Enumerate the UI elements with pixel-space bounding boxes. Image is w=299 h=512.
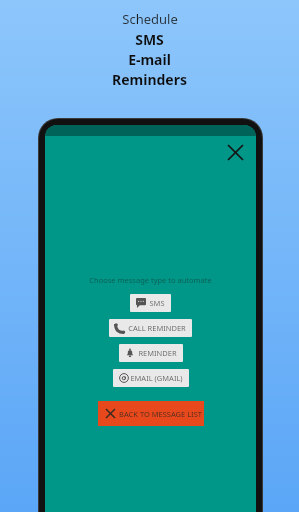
staticText: SMS [135,30,164,49]
staticText: Choose message type to automate [89,275,212,285]
staticText: CALL REMINDER [128,323,186,333]
button[interactable]: EMAIL (GMAIL) [113,369,189,387]
button[interactable]: REMINDER [119,344,183,362]
staticText: REMINDER [138,348,177,358]
button[interactable]: Close [222,139,248,165]
staticText: Schedule [122,10,178,28]
staticText: E-mail [128,50,171,69]
staticText: EMAIL (GMAIL) [130,373,183,383]
button[interactable]: SMS [130,294,171,312]
staticText: SMS [149,298,165,308]
staticText: BACK TO MESSAGE LIST [119,409,202,419]
staticText: Reminders [112,70,187,89]
button[interactable]: CALL REMINDER [109,319,192,337]
button[interactable]: BACK TO MESSAGE LIST [98,401,204,426]
